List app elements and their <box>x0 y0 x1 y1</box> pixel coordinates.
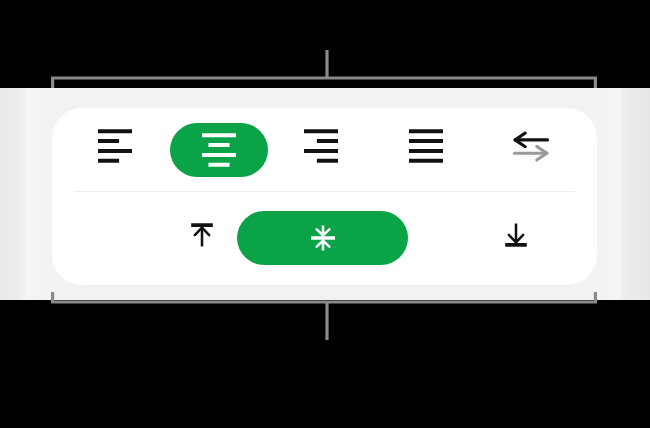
button[interactable]: Align bottom <box>489 208 543 262</box>
button[interactable]: Align left <box>88 119 142 173</box>
button[interactable]: Align top <box>175 208 229 262</box>
button[interactable]: Align center <box>170 123 268 177</box>
button[interactable]: Justify <box>399 119 453 173</box>
button[interactable]: Text direction <box>504 119 558 173</box>
button[interactable]: Align right <box>294 119 348 173</box>
button[interactable]: Align middle <box>237 211 408 265</box>
